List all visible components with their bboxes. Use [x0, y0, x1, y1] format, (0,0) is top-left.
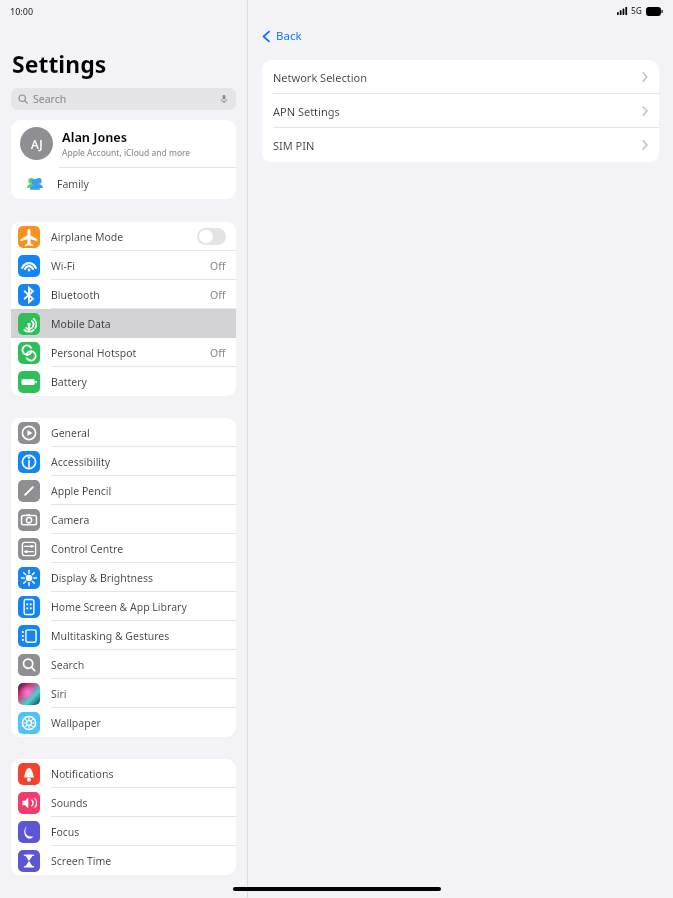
staticText: Camera [51, 513, 226, 527]
button[interactable]: Accessibility [11, 447, 236, 476]
staticText: Control Centre [51, 542, 226, 556]
button[interactable]: Multitasking & Gestures [11, 621, 236, 650]
button[interactable]: General [11, 418, 236, 447]
staticText: Airplane Mode [51, 230, 197, 244]
button[interactable]: AJ [20, 120, 226, 167]
button[interactable]: Screen Time [11, 846, 236, 875]
staticText: Screen Time [51, 854, 226, 868]
staticText: Off [210, 259, 226, 273]
button[interactable]: SIM PIN [262, 128, 659, 162]
button[interactable]: Focus [11, 817, 236, 846]
staticText: Sounds [51, 796, 226, 810]
button[interactable]: Battery [11, 367, 236, 396]
button[interactable]: Personal Hotspot [11, 338, 236, 367]
button[interactable]: Airplane Mode [11, 222, 236, 251]
button[interactable]: Search [18, 88, 229, 110]
staticText: Alan Jones [62, 129, 128, 146]
staticText: Home Screen & App Library [51, 600, 226, 614]
staticText: APN Settings [273, 104, 642, 119]
staticText: Wi-Fi [51, 259, 210, 273]
button[interactable]: Network Selection [262, 60, 659, 94]
staticText: Personal Hotspot [51, 346, 210, 360]
button[interactable]: Mobile Data [11, 309, 236, 338]
staticText: Multitasking & Gestures [51, 629, 226, 643]
staticText: General [51, 426, 226, 440]
staticText: Apple Account, iCloud and more [62, 147, 191, 159]
staticText: Focus [51, 825, 226, 839]
button[interactable]: APN Settings [262, 94, 659, 128]
staticText: Network Selection [273, 70, 642, 85]
button[interactable]: Wallpaper [11, 708, 236, 737]
button[interactable]: Siri [11, 679, 236, 708]
button[interactable]: Camera [11, 505, 236, 534]
staticText: Off [210, 288, 226, 302]
button[interactable]: Control Centre [11, 534, 236, 563]
staticText: Wallpaper [51, 716, 226, 730]
button[interactable]: Back [258, 25, 306, 47]
button[interactable]: Family [24, 168, 226, 199]
staticText: Display & Brightness [51, 571, 226, 585]
staticText: Search [51, 658, 226, 672]
button[interactable]: Sounds [11, 788, 236, 817]
staticText: Off [210, 346, 226, 360]
button[interactable]: Search [11, 650, 236, 679]
staticText: Family [57, 177, 89, 191]
staticText: Siri [51, 687, 226, 701]
staticText: 10:00 [10, 5, 34, 17]
staticText: Accessibility [51, 455, 226, 469]
button[interactable]: Apple Pencil [11, 476, 236, 505]
staticText: SIM PIN [273, 138, 642, 153]
staticText: Battery [51, 375, 226, 389]
staticText: AJ [31, 136, 43, 152]
button[interactable]: Home Screen & App Library [11, 592, 236, 621]
staticText: Back [276, 28, 302, 44]
staticText: 5G [631, 5, 643, 17]
button[interactable]: Notifications [11, 759, 236, 788]
button[interactable]: Bluetooth [11, 280, 236, 309]
staticText: Mobile Data [51, 317, 226, 331]
staticText: Apple Pencil [51, 484, 226, 498]
button[interactable]: Wi-Fi [11, 251, 236, 280]
staticText: Settings [12, 48, 107, 79]
staticText: Bluetooth [51, 288, 210, 302]
staticText: Search [33, 92, 219, 106]
button[interactable]: Display & Brightness [11, 563, 236, 592]
staticText: Notifications [51, 767, 226, 781]
